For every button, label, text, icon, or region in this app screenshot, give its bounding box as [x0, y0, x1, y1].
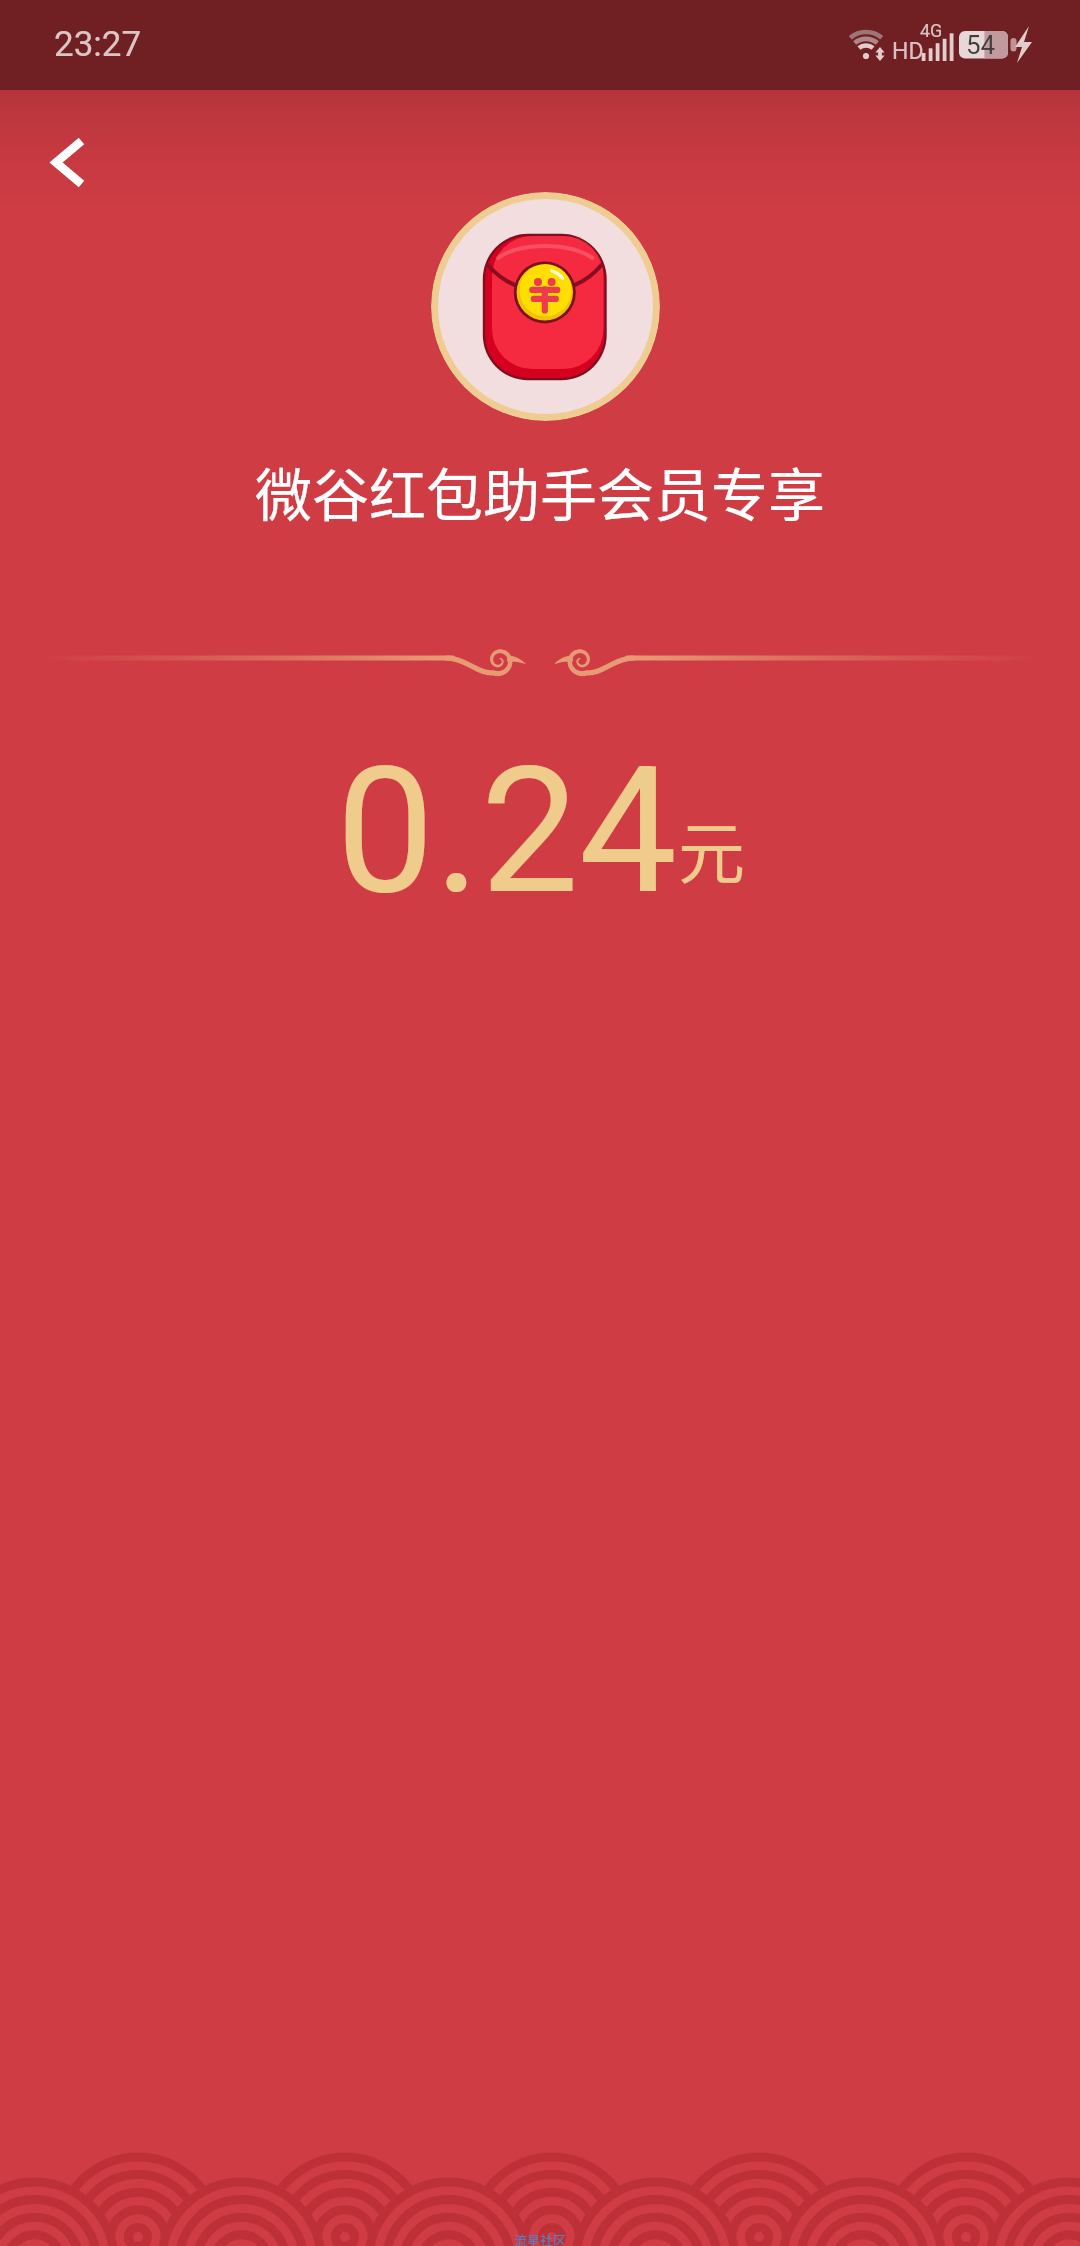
staticText: 元	[678, 800, 745, 897]
staticText: 54	[966, 30, 996, 60]
staticText: HD	[892, 38, 924, 65]
staticText: 微谷红包助手会员专享	[0, 450, 1080, 533]
button[interactable]: Red packet	[431, 192, 660, 421]
button[interactable]: Back	[28, 123, 104, 199]
staticText: 4G	[920, 20, 943, 41]
staticText: 流星社区	[514, 2230, 567, 2246]
staticText: 0.24	[336, 729, 678, 934]
staticText: 23:27	[54, 24, 142, 65]
